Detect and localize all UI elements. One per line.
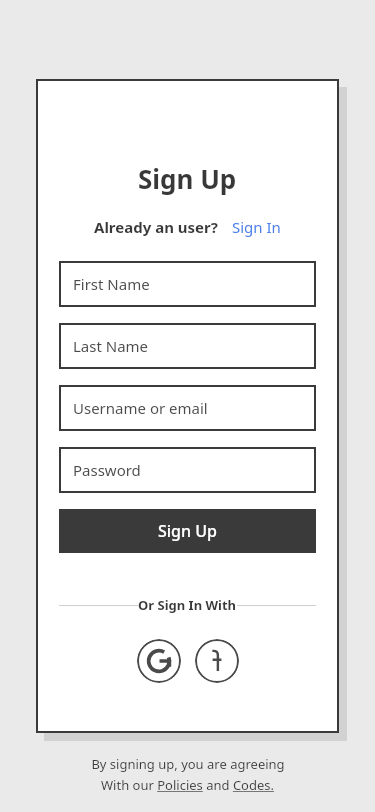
staticText: Already an user?: [94, 217, 218, 237]
button[interactable]: Password: [59, 447, 316, 493]
button[interactable]: Sign in with Google: [137, 639, 181, 683]
button[interactable]: With our Policies and Codes.: [101, 776, 274, 794]
button[interactable]: First Name: [59, 261, 316, 307]
staticText: With our Policies and Codes.: [101, 776, 274, 794]
staticText: Sign Up: [158, 520, 217, 542]
staticText: Sign In: [232, 217, 281, 237]
button[interactable]: Sign In: [232, 217, 281, 237]
staticText: Or Sign In With: [138, 596, 237, 614]
staticText: Last Name: [73, 336, 149, 356]
staticText: Username or email: [73, 398, 208, 418]
button[interactable]: Sign Up: [59, 509, 316, 553]
staticText: Sign Up: [138, 161, 237, 196]
staticText: First Name: [73, 274, 150, 294]
button[interactable]: Last Name: [59, 323, 316, 369]
button[interactable]: Username or email: [59, 385, 316, 431]
button[interactable]: Sign in with Facebook: [195, 639, 239, 683]
staticText: By signing up, you are agreeing: [91, 755, 285, 773]
staticText: Password: [73, 460, 141, 480]
